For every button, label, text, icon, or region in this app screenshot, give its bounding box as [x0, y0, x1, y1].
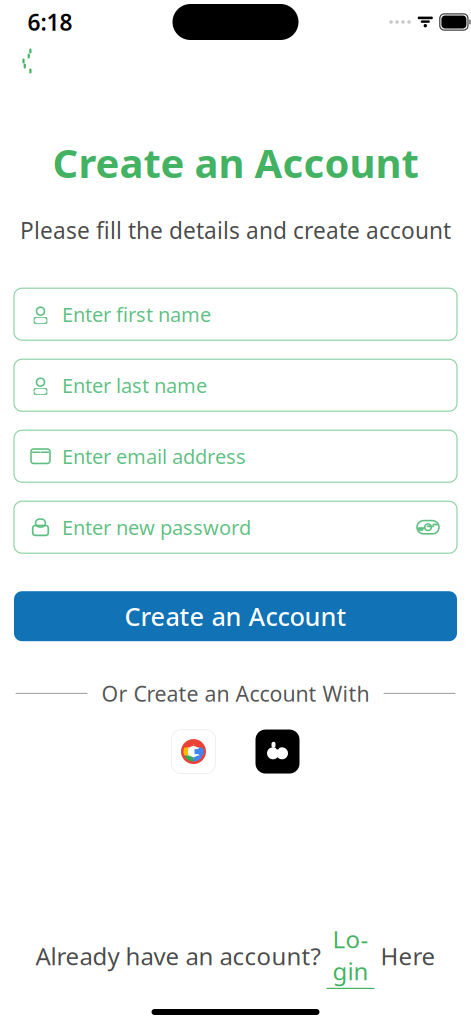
staticText: Login [332, 923, 368, 987]
button[interactable]: Create an Account [14, 591, 457, 641]
button[interactable]: Continue with Google [171, 729, 215, 773]
button[interactable]: Enter email address [14, 430, 457, 482]
button[interactable]: Already have an account? [35, 923, 435, 989]
staticText: Enter first name [62, 301, 211, 327]
button[interactable]: Continue with Apple [255, 729, 299, 773]
button[interactable]: Enter last name [14, 359, 457, 411]
staticText: Please fill the details and create accou… [20, 215, 451, 245]
staticText: Enter new password [62, 514, 251, 540]
staticText: Create an Account [52, 136, 418, 189]
staticText: Create an Account [124, 599, 346, 633]
button[interactable]: Enter first name [14, 288, 457, 340]
staticText: Already have an account? [35, 940, 326, 972]
button[interactable]: Enter new password [14, 501, 457, 553]
staticText: 6:18 [27, 7, 72, 37]
staticText: Enter last name [62, 372, 207, 398]
button[interactable]: Back [4, 44, 48, 78]
staticText: Enter email address [62, 443, 246, 469]
staticText: Here [374, 940, 435, 972]
staticText: Or Create an Account With [101, 679, 369, 707]
